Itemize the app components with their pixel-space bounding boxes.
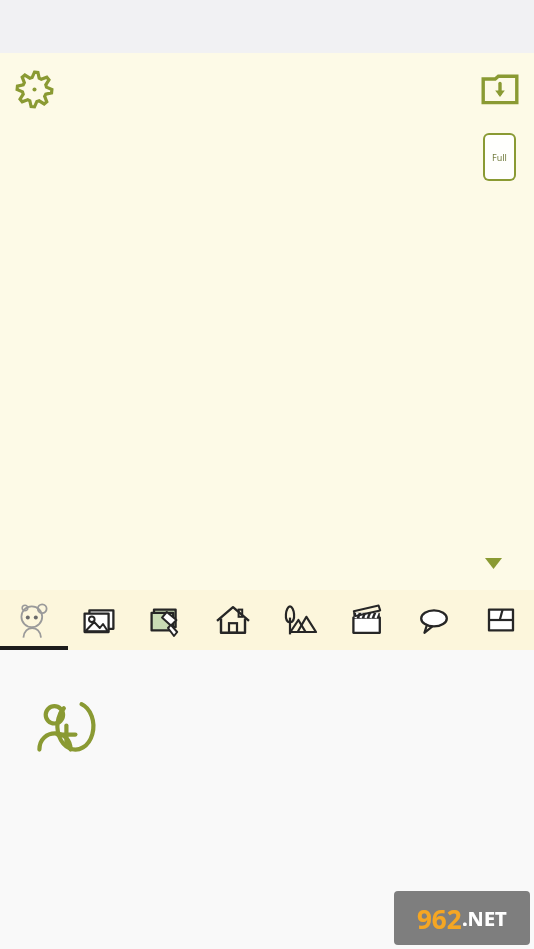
button[interactable]: Expand panel <box>480 550 506 576</box>
button[interactable]: Chat <box>400 590 467 650</box>
staticText: 962 <box>417 901 462 936</box>
button[interactable]: Layout <box>467 590 534 650</box>
button[interactable]: Video <box>333 590 400 650</box>
staticText: .NET <box>462 905 507 932</box>
button[interactable]: Character <box>0 590 66 650</box>
button[interactable]: Settings <box>10 65 58 113</box>
button[interactable]: House <box>199 590 266 650</box>
button[interactable]: Scenery <box>266 590 333 650</box>
button[interactable]: Download folder <box>476 65 524 113</box>
button[interactable]: Full <box>483 133 516 181</box>
button[interactable]: Add friend <box>28 689 106 767</box>
button[interactable]: Paint <box>132 590 199 650</box>
staticText: Full <box>492 151 507 163</box>
button[interactable]: Photos <box>66 590 132 650</box>
